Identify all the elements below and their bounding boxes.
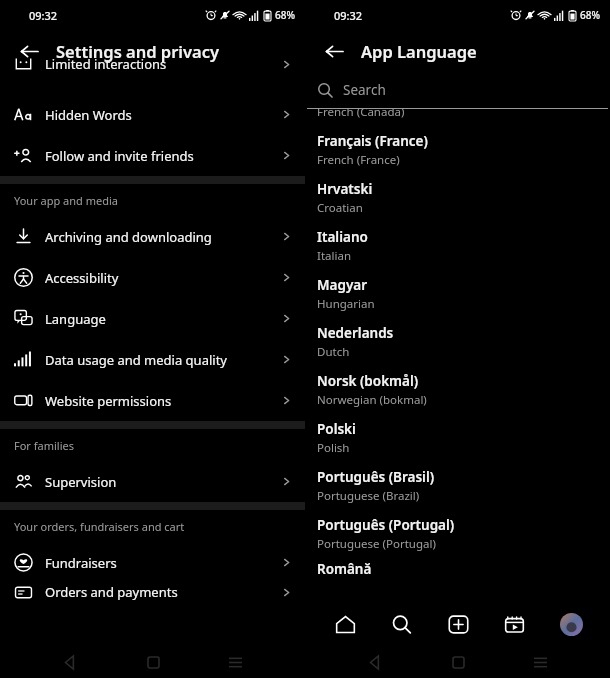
button[interactable]: Reels bbox=[497, 607, 531, 641]
button[interactable]: Français (France) bbox=[305, 126, 610, 174]
staticText: 09:32 bbox=[334, 8, 363, 23]
button[interactable]: Supervision bbox=[0, 461, 305, 502]
staticText: Fundraisers bbox=[45, 554, 280, 572]
button[interactable]: Nederlands bbox=[305, 318, 610, 366]
button[interactable]: Back bbox=[57, 649, 83, 675]
staticText: Nederlands bbox=[317, 324, 394, 342]
button[interactable]: Home bbox=[328, 607, 362, 641]
button[interactable]: Home bbox=[140, 649, 166, 675]
staticText: Português (Brasil) bbox=[317, 468, 435, 486]
staticText: Norsk (bokmål) bbox=[317, 372, 419, 390]
staticText: Português (Portugal) bbox=[317, 516, 455, 534]
button[interactable]: Accessibility bbox=[0, 257, 305, 298]
button[interactable]: Norsk (bokmål) bbox=[305, 366, 610, 414]
staticText: French (France) bbox=[317, 152, 400, 168]
button[interactable]: Search bbox=[384, 607, 418, 641]
button[interactable]: Recents bbox=[527, 649, 553, 675]
staticText: Your orders, fundraisers and cart bbox=[14, 519, 185, 534]
button[interactable]: Hidden Words bbox=[0, 94, 305, 135]
button[interactable]: Home bbox=[445, 649, 471, 675]
button[interactable]: Profile bbox=[554, 607, 588, 641]
button[interactable]: Português (Brasil) bbox=[305, 462, 610, 510]
button[interactable]: Back bbox=[362, 649, 388, 675]
staticText: Settings and privacy bbox=[56, 40, 220, 62]
staticText: Your app and media bbox=[14, 193, 118, 208]
button[interactable]: Data usage and media quality bbox=[0, 339, 305, 380]
staticText: French (Canada) bbox=[317, 104, 405, 120]
staticText: Archiving and downloading bbox=[45, 228, 280, 246]
staticText: Supervision bbox=[45, 473, 280, 491]
staticText: Follow and invite friends bbox=[45, 147, 280, 165]
staticText: Italiano bbox=[317, 228, 368, 246]
staticText: App Language bbox=[361, 40, 477, 62]
staticText: Data usage and media quality bbox=[45, 351, 280, 369]
button[interactable]: Back bbox=[319, 36, 349, 66]
staticText: Accessibility bbox=[45, 269, 280, 287]
staticText: Portuguese (Brazil) bbox=[317, 488, 420, 504]
button[interactable]: Orders and payments bbox=[0, 581, 305, 603]
button[interactable]: Archiving and downloading bbox=[0, 216, 305, 257]
staticText: Search bbox=[343, 81, 386, 99]
staticText: For families bbox=[14, 438, 74, 453]
staticText: Hrvatski bbox=[317, 180, 373, 198]
staticText: Polski bbox=[317, 420, 356, 438]
button[interactable]: Magyar bbox=[305, 270, 610, 318]
button[interactable]: Language bbox=[0, 298, 305, 339]
button[interactable]: Recents bbox=[222, 649, 248, 675]
staticText: Italian bbox=[317, 248, 351, 264]
staticText: Hidden Words bbox=[45, 106, 280, 124]
staticText: Română bbox=[317, 560, 372, 578]
staticText: Français (France) bbox=[317, 132, 428, 150]
button[interactable]: Limited interactions bbox=[0, 53, 305, 75]
button[interactable]: Fundraisers bbox=[0, 542, 305, 583]
staticText: 68% bbox=[275, 8, 295, 22]
button[interactable]: Back bbox=[14, 36, 44, 66]
button[interactable]: Português (Portugal) bbox=[305, 510, 610, 558]
staticText: Norwegian (bokmal) bbox=[317, 392, 427, 408]
button[interactable]: Italiano bbox=[305, 222, 610, 270]
button[interactable]: Orders and payments bbox=[0, 583, 305, 605]
button[interactable]: Română bbox=[305, 558, 610, 580]
staticText: Hungarian bbox=[317, 296, 375, 312]
staticText: Magyar bbox=[317, 276, 368, 294]
button[interactable]: Create bbox=[441, 607, 475, 641]
staticText: Language bbox=[45, 310, 280, 328]
button[interactable]: Polski bbox=[305, 414, 610, 462]
staticText: Limited interactions bbox=[45, 55, 280, 73]
staticText: Portuguese (Portugal) bbox=[317, 536, 436, 552]
staticText: Dutch bbox=[317, 344, 350, 360]
staticText: Orders and payments bbox=[45, 583, 280, 601]
button[interactable]: Hrvatski bbox=[305, 174, 610, 222]
staticText: Croatian bbox=[317, 200, 363, 216]
staticText: 09:32 bbox=[29, 8, 58, 23]
button[interactable]: French (Canada) bbox=[305, 109, 610, 126]
button[interactable]: Website permissions bbox=[0, 380, 305, 421]
staticText: Website permissions bbox=[45, 392, 280, 410]
button[interactable]: Follow and invite friends bbox=[0, 135, 305, 176]
staticText: Polish bbox=[317, 440, 350, 456]
staticText: 68% bbox=[580, 8, 600, 22]
button[interactable]: Search bbox=[305, 72, 610, 108]
